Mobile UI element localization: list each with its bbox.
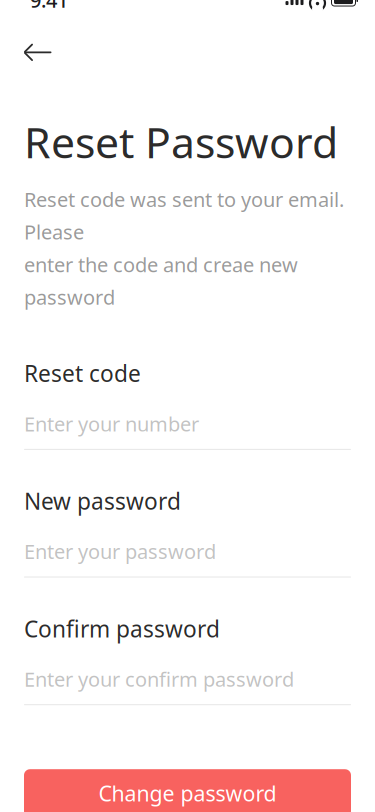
staticText: Reset Password bbox=[24, 113, 338, 170]
button[interactable]: Reset code bbox=[24, 358, 351, 450]
staticText: Enter your confirm password bbox=[24, 666, 294, 692]
staticText: Confirm password bbox=[24, 614, 220, 644]
button[interactable]: Back bbox=[16, 35, 60, 69]
button[interactable]: Confirm password bbox=[24, 614, 351, 705]
staticText: New password bbox=[24, 486, 181, 516]
staticText: 9:41 bbox=[30, 0, 68, 13]
button[interactable]: Change password bbox=[24, 769, 351, 812]
button[interactable]: New password bbox=[24, 486, 351, 578]
staticText: Reset code bbox=[24, 358, 141, 388]
staticText: Enter your password bbox=[24, 538, 216, 565]
staticText: Enter your number bbox=[24, 410, 199, 437]
staticText: Change password bbox=[98, 779, 276, 807]
staticText: Reset code was sent to your email. Pleas… bbox=[24, 186, 344, 310]
